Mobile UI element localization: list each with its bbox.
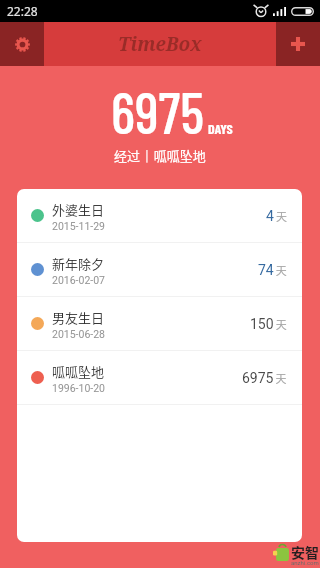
- button[interactable]: Settings: [0, 22, 44, 66]
- staticText: DAYS: [208, 120, 233, 137]
- button[interactable]: Add: [276, 22, 320, 66]
- staticText: 150 天: [250, 316, 287, 332]
- staticText: 74 天: [258, 262, 287, 278]
- staticText: 6975 天: [242, 370, 287, 386]
- staticText: 经过 | 呱呱坠地: [114, 146, 206, 165]
- staticText: 2015-11-29: [52, 220, 106, 232]
- staticText: 22:28: [7, 3, 38, 19]
- staticText: 2016-02-07: [52, 274, 106, 286]
- staticText: 外婆生日: [52, 200, 105, 219]
- staticText: 2015-06-28: [52, 328, 106, 340]
- staticText: 6975: [111, 77, 205, 145]
- staticText: 新年除夕: [52, 254, 105, 273]
- staticText: anzhi.com: [291, 559, 319, 566]
- staticText: 4 天: [266, 208, 287, 224]
- button[interactable]: 新年除夕: [17, 243, 302, 296]
- button[interactable]: 呱呱坠地: [17, 351, 302, 404]
- staticText: 安智: [291, 542, 319, 562]
- staticText: 呱呱坠地: [52, 362, 105, 381]
- button[interactable]: 男友生日: [17, 297, 302, 350]
- button[interactable]: 外婆生日: [17, 189, 302, 242]
- staticText: 男友生日: [52, 308, 105, 327]
- staticText: 1996-10-20: [52, 382, 106, 394]
- staticText: TimeBox: [118, 31, 202, 57]
